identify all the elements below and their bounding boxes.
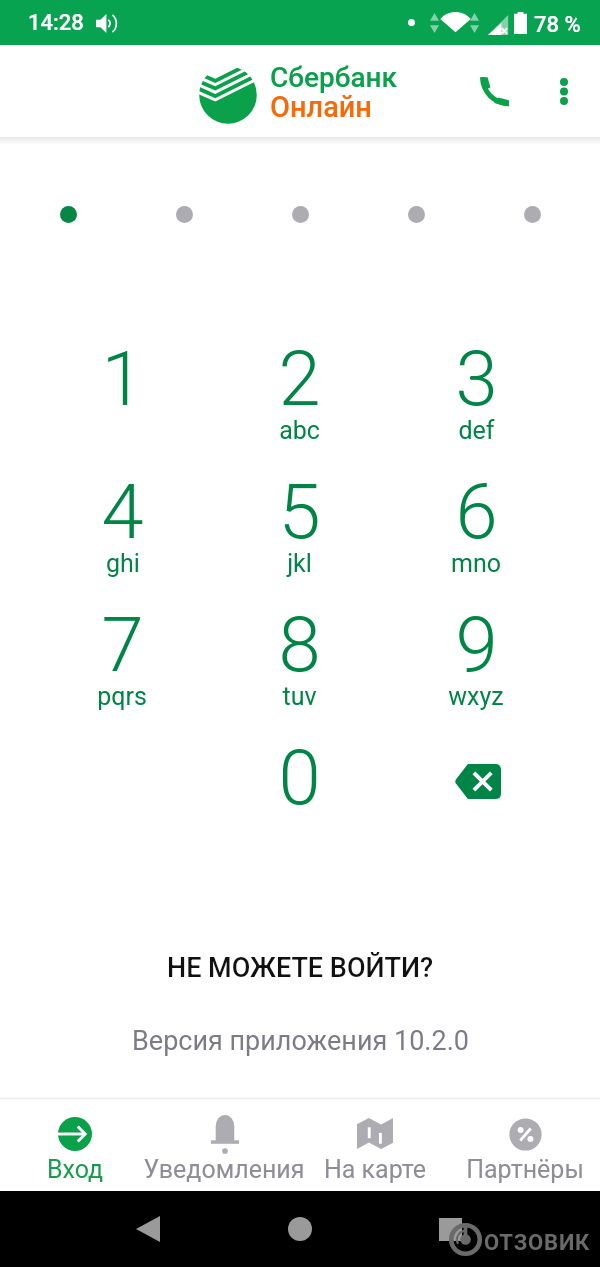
button[interactable]: 3 <box>396 323 556 447</box>
staticText: 14:28 <box>28 10 84 36</box>
staticText: 0 <box>278 733 321 822</box>
button[interactable]: Call <box>469 67 517 115</box>
staticText: Онлайн <box>270 90 372 124</box>
staticText: pqrs <box>97 682 147 711</box>
staticText: Вход <box>0 1155 175 1184</box>
staticText: def <box>458 416 495 445</box>
button[interactable]: Recent apps <box>420 1199 480 1259</box>
button[interactable]: 9 <box>396 589 556 713</box>
button[interactable] <box>300 1100 450 1191</box>
button[interactable]: 7 <box>42 589 202 713</box>
button[interactable]: 5 <box>219 456 379 580</box>
button[interactable]: 4 <box>42 456 202 580</box>
staticText: Сбербанк <box>270 61 398 94</box>
button[interactable]: 2 <box>219 323 379 447</box>
staticText: 6 <box>455 467 498 556</box>
staticText: ОТЗОВИК <box>484 1230 591 1256</box>
staticText: 1 <box>101 334 144 423</box>
button[interactable]: НЕ МОЖЕТЕ ВОЙТИ? <box>155 947 446 989</box>
button[interactable]: 1 <box>42 323 202 447</box>
button[interactable] <box>450 1100 600 1191</box>
staticText: Версия приложения 10.2.0 <box>132 1025 469 1057</box>
staticText: 7 <box>101 600 144 689</box>
staticText: Уведомления <box>124 1155 324 1184</box>
button[interactable]: More options <box>540 68 587 115</box>
staticText: НЕ МОЖЕТЕ ВОЙТИ? <box>167 952 434 984</box>
button[interactable]: Home <box>270 1199 330 1259</box>
staticText: ghi <box>106 549 140 578</box>
button[interactable]: 8 <box>219 589 379 713</box>
staticText: jkl <box>287 549 312 578</box>
button[interactable]: Backspace <box>420 731 536 831</box>
staticText: wxyz <box>448 682 504 711</box>
button[interactable] <box>150 1100 300 1191</box>
staticText: На карте <box>275 1155 475 1184</box>
button[interactable]: 0 <box>219 722 379 846</box>
staticText: 8 <box>278 600 321 689</box>
staticText: mno <box>451 549 501 578</box>
staticText: 4 <box>101 467 144 556</box>
staticText: abc <box>279 416 320 445</box>
staticText: tuv <box>282 682 317 711</box>
staticText: 2 <box>278 334 321 423</box>
button[interactable] <box>0 1100 150 1191</box>
staticText: 9 <box>455 600 498 689</box>
staticText: 78 % <box>534 12 581 38</box>
staticText: 3 <box>455 334 498 423</box>
staticText: Партнёры <box>425 1155 600 1184</box>
button[interactable]: 6 <box>396 456 556 580</box>
button[interactable]: Back <box>118 1199 178 1259</box>
staticText: 5 <box>278 467 321 556</box>
